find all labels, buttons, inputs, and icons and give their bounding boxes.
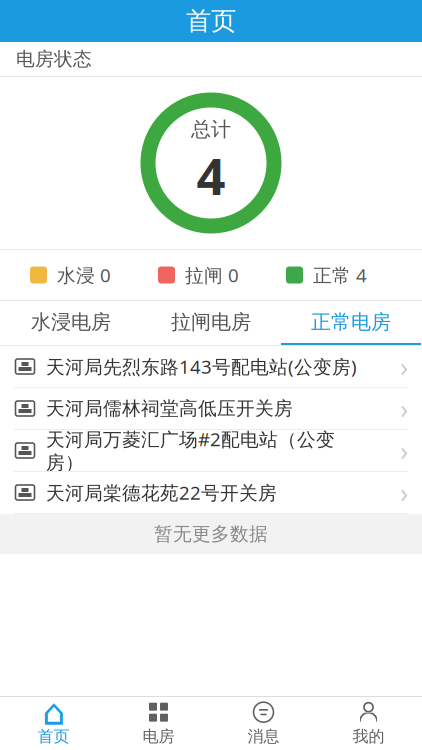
button[interactable]: 天河局先烈东路143号配电站(公变房) [0,346,422,388]
staticText: 水浸电房 [31,310,111,334]
staticText: 拉闸电房 [171,310,251,334]
button[interactable]: 消息 [211,697,316,750]
staticText: 电房 [142,727,174,746]
staticText: › [400,349,408,384]
staticText: 消息 [247,727,279,746]
staticText: › [400,391,408,426]
staticText: 4 [196,142,225,209]
button[interactable]: 天河局儒林祠堂高低压开关房 [0,388,422,430]
staticText: 天河局先烈东路143号配电站(公变房) [46,354,357,379]
button[interactable]: 我的 [316,697,421,750]
button[interactable]: 正常电房 [281,301,421,345]
button[interactable]: 电房 [106,697,211,750]
staticText: 总计 [191,117,231,142]
staticText: 拉闸 0 [185,263,239,287]
button[interactable]: 拉闸电房 [141,301,281,345]
button[interactable]: 天河局万菱汇广场#2配电站（公变房） [0,430,422,472]
staticText: 天河局棠德花苑22号开关房 [46,480,277,505]
staticText: › [400,475,408,510]
button[interactable]: 天河局棠德花苑22号开关房 [0,472,422,514]
button[interactable]: ⌂ [1,697,106,750]
staticText: 首页 [186,5,236,36]
staticText: › [400,433,408,468]
staticText: 天河局万菱汇广场#2配电站（公变房） [46,427,335,474]
staticText: 正常 4 [313,263,367,287]
staticText: 水浸 0 [57,263,111,287]
staticText: 天河局儒林祠堂高低压开关房 [46,397,293,420]
button[interactable]: 水浸电房 [1,301,141,345]
staticText: 首页 [37,727,69,746]
staticText: ⌂ [42,692,65,733]
staticText: 我的 [352,727,384,746]
staticText: 正常电房 [311,310,391,334]
staticText: 电房状态 [16,47,92,70]
staticText: 暂无更多数据 [154,522,268,545]
